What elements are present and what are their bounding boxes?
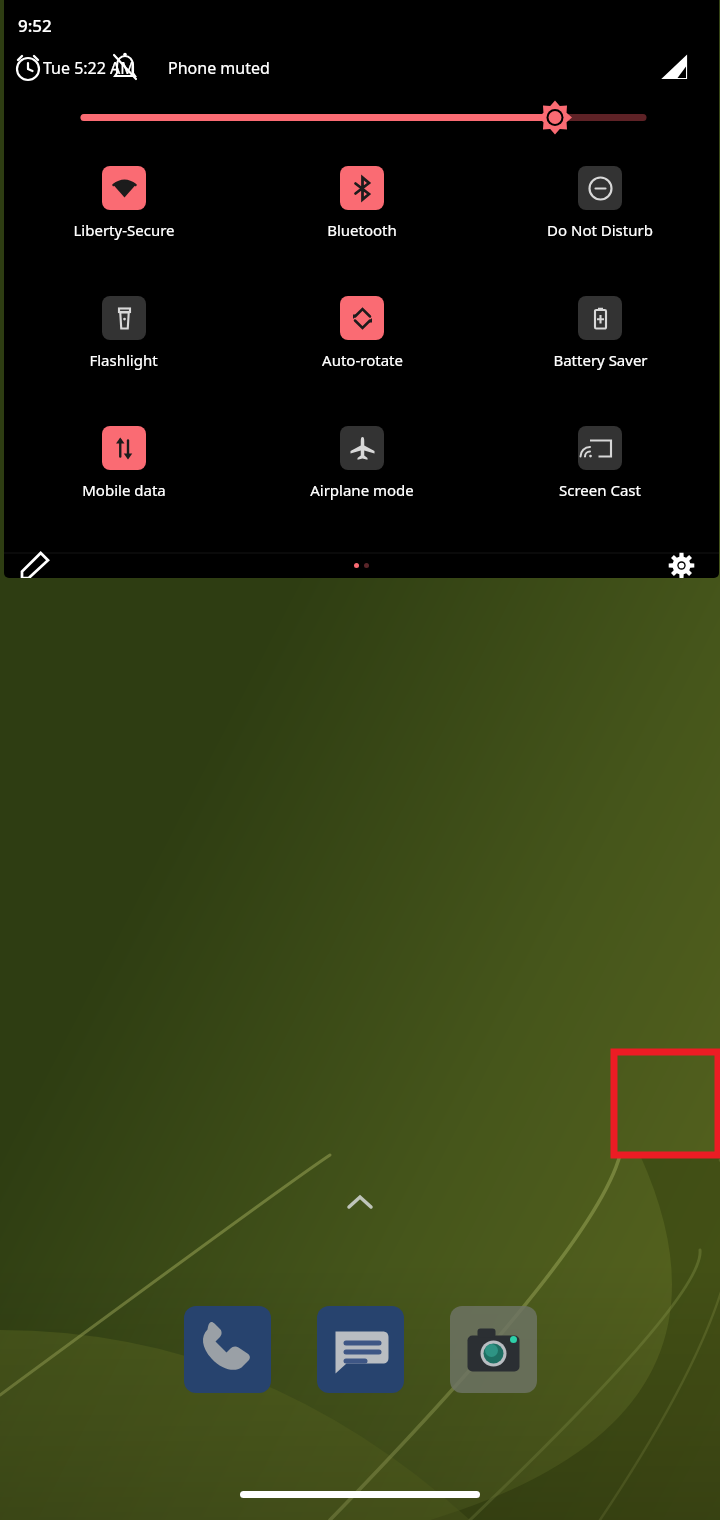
staticText: Screen Cast (559, 480, 641, 500)
staticText: Bluetooth (327, 220, 397, 240)
button[interactable]: Screen Cast (481, 423, 719, 500)
button[interactable]: Flashlight (4, 293, 243, 370)
button[interactable]: Auto-rotate (243, 293, 481, 370)
button[interactable]: Settings (659, 553, 703, 578)
staticText: 9:52 (18, 14, 52, 37)
button[interactable]: Airplane mode (243, 423, 481, 500)
staticText: Do Not Disturb (547, 220, 653, 240)
staticText: Liberty-Secure (73, 220, 175, 240)
staticText: Phone muted (168, 57, 270, 79)
button[interactable]: Mobile data (4, 423, 243, 500)
staticText: Battery Saver (553, 350, 648, 370)
staticText: Auto-rotate (322, 350, 403, 370)
button[interactable]: Battery Saver (481, 293, 719, 370)
button[interactable]: Edit tiles (18, 553, 52, 578)
button[interactable]: Liberty-Secure (4, 163, 243, 240)
staticText: Flashlight (89, 350, 158, 370)
button[interactable]: Do Not Disturb (481, 163, 719, 240)
staticText: Airplane mode (310, 480, 414, 500)
staticText: Mobile data (82, 480, 166, 500)
button[interactable]: Bluetooth (243, 163, 481, 240)
staticText: Tue 5:22 AM (43, 57, 135, 79)
button[interactable]: Brightness (4, 89, 719, 144)
